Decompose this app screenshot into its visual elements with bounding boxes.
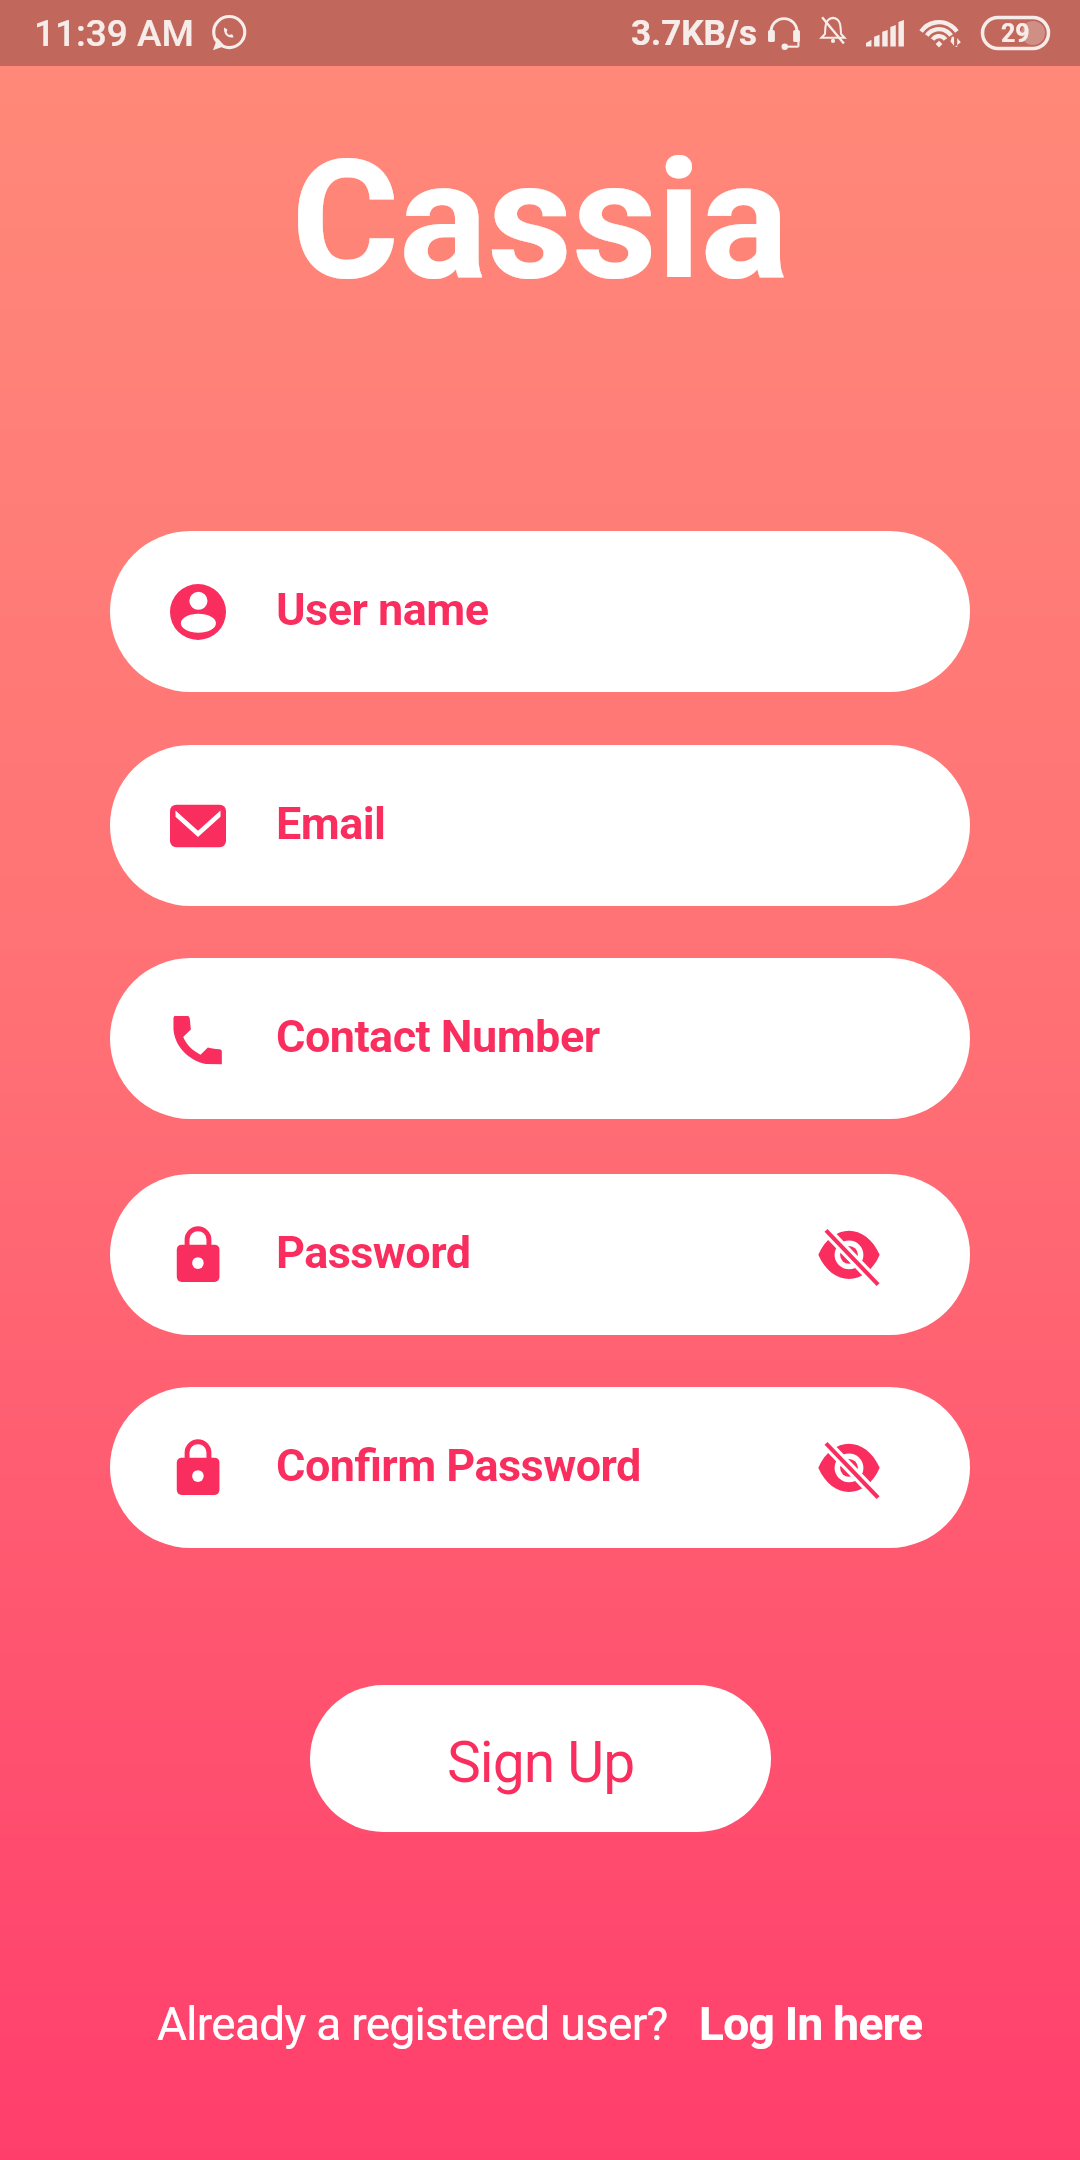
staticText: 3.7KB/s bbox=[631, 13, 757, 54]
button[interactable]: Show password bbox=[789, 1195, 909, 1315]
button[interactable]: Email bbox=[110, 745, 970, 906]
staticText: 11:39 AM bbox=[34, 12, 194, 55]
button[interactable]: Contact Number bbox=[110, 958, 970, 1119]
button[interactable]: Log In here bbox=[699, 1997, 923, 2051]
staticText: Contact Number bbox=[276, 1010, 600, 1063]
staticText: 29 bbox=[1001, 19, 1030, 48]
staticText: Email bbox=[276, 797, 386, 850]
staticText: Password bbox=[276, 1226, 471, 1279]
staticText: User name bbox=[276, 583, 489, 636]
staticText: Cassia bbox=[0, 124, 1080, 317]
button[interactable]: Sign Up bbox=[310, 1685, 771, 1832]
button[interactable]: Show password bbox=[789, 1408, 909, 1528]
button[interactable]: Password bbox=[110, 1174, 970, 1335]
staticText: Confirm Password bbox=[276, 1439, 641, 1492]
staticText: Sign Up bbox=[447, 1729, 635, 1796]
button[interactable]: Confirm Password bbox=[110, 1387, 970, 1548]
staticText: Already a registered user? bbox=[157, 1997, 668, 2051]
button[interactable]: User name bbox=[110, 531, 970, 692]
